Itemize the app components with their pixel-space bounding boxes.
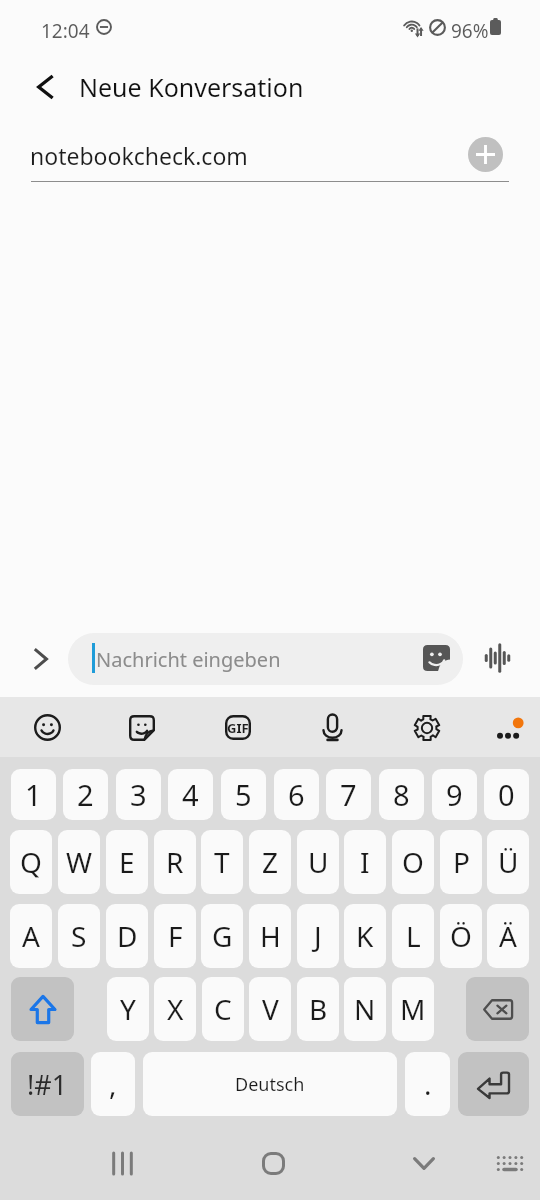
button[interactable]: 8 — [379, 769, 424, 820]
button[interactable]: K — [344, 904, 386, 968]
staticText: 6 — [288, 775, 305, 814]
button[interactable]: 4 — [168, 769, 213, 820]
staticText: H — [260, 917, 281, 955]
button[interactable]: R — [154, 830, 196, 894]
button[interactable]: Stickers — [114, 697, 170, 758]
staticText: R — [166, 843, 184, 881]
button[interactable]: C — [202, 977, 244, 1041]
button[interactable]: D — [106, 904, 148, 968]
button[interactable]: Home — [246, 1136, 300, 1190]
staticText: 9 — [446, 775, 463, 814]
staticText: Ä — [499, 917, 517, 955]
button[interactable]: Z — [249, 830, 291, 894]
button[interactable]: Back — [23, 65, 67, 109]
button[interactable]: I — [344, 830, 386, 894]
button[interactable]: Add recipient — [468, 137, 503, 172]
button[interactable]: , — [91, 1052, 135, 1116]
button[interactable]: 1 — [11, 769, 56, 820]
staticText: 8 — [393, 775, 410, 814]
button[interactable]: 6 — [274, 769, 319, 820]
staticText: K — [356, 917, 374, 955]
button[interactable]: 5 — [221, 769, 266, 820]
button[interactable]: Expand actions — [18, 637, 62, 681]
button[interactable]: F — [154, 904, 196, 968]
staticText: B — [309, 990, 328, 1028]
button[interactable]: GIF — [210, 697, 266, 758]
staticText: C — [214, 990, 232, 1028]
button[interactable]: Shift — [11, 977, 74, 1041]
button[interactable]: !#1 — [11, 1052, 84, 1116]
staticText: W — [66, 843, 93, 881]
button[interactable]: Emoji — [19, 697, 75, 758]
staticText: Nachricht eingeben — [96, 646, 281, 673]
button[interactable]: Ü — [487, 830, 529, 894]
staticText: Q — [20, 843, 42, 881]
button[interactable]: T — [201, 830, 243, 894]
staticText: GIF — [227, 719, 249, 737]
staticText: P — [453, 843, 470, 881]
button[interactable]: A — [10, 904, 52, 968]
button[interactable]: . — [405, 1052, 450, 1116]
staticText: M — [400, 990, 426, 1028]
button[interactable]: W — [58, 830, 100, 894]
button[interactable]: L — [392, 904, 434, 968]
button[interactable]: 9 — [432, 769, 477, 820]
button[interactable]: E — [106, 830, 148, 894]
button[interactable]: S — [58, 904, 100, 968]
button[interactable]: O — [392, 830, 434, 894]
staticText: Neue Konversation — [79, 70, 304, 104]
button[interactable]: P — [440, 830, 482, 894]
button[interactable]: Ä — [487, 904, 529, 968]
button[interactable]: Deutsch — [143, 1052, 397, 1116]
button[interactable]: Ö — [440, 904, 482, 968]
button[interactable]: Hide keyboard — [397, 1136, 451, 1190]
button[interactable]: Change keyboard — [483, 1136, 537, 1190]
button[interactable]: M — [392, 977, 434, 1041]
button[interactable]: 3 — [116, 769, 161, 820]
other: Backspace — [466, 977, 529, 1041]
staticText: E — [119, 843, 135, 881]
staticText: T — [214, 843, 230, 881]
button[interactable]: Nachricht eingeben — [68, 633, 463, 685]
staticText: 2 — [77, 775, 94, 814]
button[interactable]: B — [297, 977, 339, 1041]
button[interactable]: U — [297, 830, 339, 894]
staticText: A — [22, 917, 40, 955]
staticText: Ö — [450, 917, 472, 955]
button[interactable]: Voice input — [474, 635, 520, 681]
staticText: O — [402, 843, 424, 881]
staticText: U — [308, 843, 329, 881]
button[interactable]: Voice typing — [304, 697, 360, 758]
button[interactable]: 7 — [326, 769, 371, 820]
staticText: Y — [120, 990, 136, 1028]
button[interactable]: 0 — [484, 769, 529, 820]
button[interactable]: X — [154, 977, 196, 1041]
staticText: J — [314, 917, 322, 955]
other: Enter — [458, 1052, 529, 1116]
staticText: 96% — [451, 18, 489, 44]
staticText: . — [424, 1065, 432, 1103]
staticText: Z — [262, 843, 279, 881]
staticText: Ü — [498, 843, 519, 881]
button[interactable]: Enter — [458, 1052, 529, 1116]
staticText: 5 — [235, 775, 252, 814]
staticText: N — [354, 990, 376, 1028]
button[interactable]: N — [344, 977, 386, 1041]
button[interactable]: Q — [10, 830, 52, 894]
button[interactable]: Backspace — [466, 977, 529, 1041]
button[interactable]: J — [297, 904, 339, 968]
button[interactable]: V — [249, 977, 291, 1041]
staticText: !#1 — [27, 1066, 68, 1103]
button[interactable]: G — [201, 904, 243, 968]
staticText: D — [117, 917, 138, 955]
button[interactable]: Settings — [399, 697, 455, 758]
staticText: Deutsch — [235, 1072, 305, 1097]
staticText: 0 — [498, 775, 515, 814]
button[interactable]: Recents — [95, 1136, 149, 1190]
button[interactable]: 2 — [63, 769, 108, 820]
button[interactable]: H — [249, 904, 291, 968]
button[interactable]: More options — [480, 697, 536, 758]
button[interactable]: Stickers — [418, 640, 454, 676]
staticText: 4 — [182, 775, 199, 814]
button[interactable]: Y — [107, 977, 149, 1041]
